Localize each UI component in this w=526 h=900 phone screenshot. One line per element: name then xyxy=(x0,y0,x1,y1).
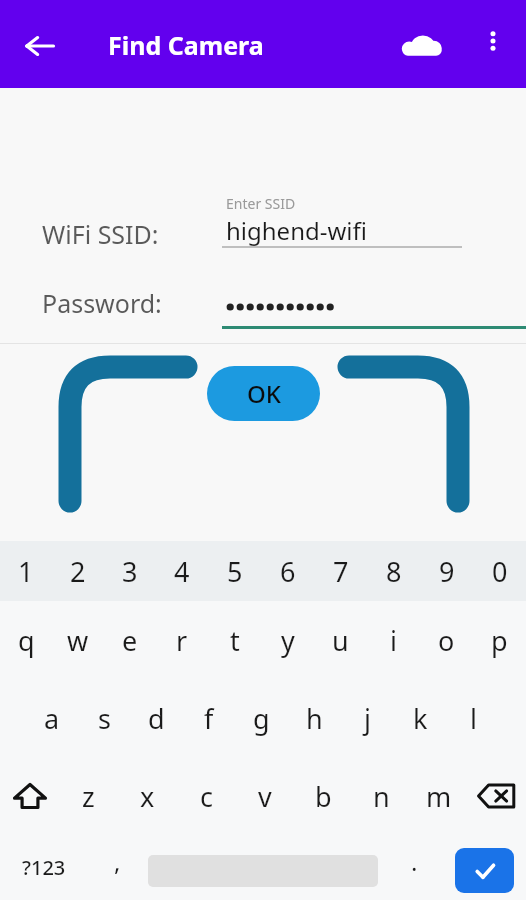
button[interactable]: Backspace xyxy=(468,757,526,835)
button[interactable]: e xyxy=(104,601,156,679)
staticText: d xyxy=(148,700,165,737)
staticText: e xyxy=(122,622,138,659)
staticText: q xyxy=(18,622,35,659)
staticText: 9 xyxy=(439,553,455,590)
staticText: v xyxy=(258,778,272,815)
staticText: l xyxy=(470,700,477,737)
button[interactable]: h xyxy=(288,679,341,757)
button[interactable]: 1 xyxy=(0,541,52,601)
button[interactable]: z xyxy=(59,757,118,835)
button[interactable]: w xyxy=(52,601,104,679)
button[interactable]: m xyxy=(410,757,468,835)
staticText: a xyxy=(44,700,60,737)
staticText: k xyxy=(413,700,428,737)
button[interactable]: j xyxy=(341,679,394,757)
button[interactable]: q xyxy=(0,601,52,679)
button[interactable]: b xyxy=(294,757,352,835)
button[interactable]: u xyxy=(314,601,367,679)
staticText: j xyxy=(364,700,371,737)
staticText: u xyxy=(332,622,349,659)
staticText: o xyxy=(438,622,455,659)
button[interactable]: Cloud xyxy=(392,16,452,76)
button[interactable]: 3 xyxy=(104,541,156,601)
button[interactable]: More options xyxy=(468,16,518,66)
staticText: 0 xyxy=(492,553,508,590)
staticText: 7 xyxy=(333,553,349,590)
button[interactable]: l xyxy=(447,679,500,757)
staticText: , xyxy=(114,845,121,878)
staticText: r xyxy=(176,622,188,659)
staticText: . xyxy=(411,845,418,878)
button[interactable] xyxy=(222,268,526,332)
staticText: WiFi SSID: xyxy=(42,217,159,251)
button[interactable]: 4 xyxy=(156,541,208,601)
staticText: highend-wifi xyxy=(226,214,367,247)
staticText: ?123 xyxy=(22,854,66,881)
staticText: z xyxy=(82,778,95,815)
button[interactable]: 0 xyxy=(473,541,526,601)
staticText: c xyxy=(200,778,213,815)
button[interactable]: y xyxy=(261,601,314,679)
button[interactable]: o xyxy=(420,601,473,679)
button[interactable]: g xyxy=(235,679,288,757)
staticText: i xyxy=(390,622,397,659)
button[interactable]: ?123 xyxy=(0,835,88,900)
button[interactable]: 5 xyxy=(208,541,261,601)
button[interactable]: 2 xyxy=(52,541,104,601)
button[interactable]: 6 xyxy=(261,541,314,601)
button[interactable]: n xyxy=(352,757,410,835)
button[interactable]: f xyxy=(182,679,235,757)
staticText: g xyxy=(253,700,270,737)
staticText: Find Camera xyxy=(108,28,264,62)
button[interactable]: c xyxy=(177,757,236,835)
staticText: 4 xyxy=(174,553,190,590)
button[interactable]: a xyxy=(26,679,78,757)
staticText: 6 xyxy=(280,553,296,590)
button[interactable]: x xyxy=(118,757,177,835)
staticText: 5 xyxy=(227,553,243,590)
button[interactable]: OK xyxy=(207,366,320,421)
button[interactable]: i xyxy=(367,601,420,679)
staticText: x xyxy=(140,778,155,815)
button[interactable]: s xyxy=(78,679,130,757)
staticText: m xyxy=(426,778,452,815)
staticText: Password: xyxy=(42,286,162,320)
button[interactable]: p xyxy=(473,601,526,679)
button[interactable]: k xyxy=(394,679,447,757)
staticText: b xyxy=(315,778,332,815)
staticText: Enter SSID xyxy=(226,194,296,213)
staticText: t xyxy=(230,622,240,659)
button[interactable]: 9 xyxy=(420,541,473,601)
button[interactable]: d xyxy=(130,679,182,757)
staticText: 2 xyxy=(70,553,86,590)
button[interactable]: 8 xyxy=(367,541,420,601)
button[interactable]: , xyxy=(88,835,146,900)
button[interactable]: highend-wifi xyxy=(222,88,464,248)
button[interactable]: . xyxy=(386,835,442,900)
staticText: h xyxy=(306,700,323,737)
staticText: y xyxy=(281,622,295,659)
button[interactable]: 7 xyxy=(314,541,367,601)
staticText: 3 xyxy=(122,553,138,590)
staticText: s xyxy=(98,700,111,737)
staticText: 8 xyxy=(386,553,402,590)
button[interactable]: Shift xyxy=(0,757,59,835)
button[interactable]: t xyxy=(208,601,261,679)
staticText: w xyxy=(67,622,89,659)
staticText: 1 xyxy=(18,553,34,590)
button[interactable]: Back xyxy=(12,18,68,74)
staticText: f xyxy=(204,700,214,737)
staticText: p xyxy=(491,622,508,659)
button[interactable]: v xyxy=(236,757,294,835)
staticText: n xyxy=(373,778,390,815)
staticText: OK xyxy=(247,377,281,410)
button[interactable]: r xyxy=(156,601,208,679)
button[interactable]: Enter xyxy=(455,848,514,893)
